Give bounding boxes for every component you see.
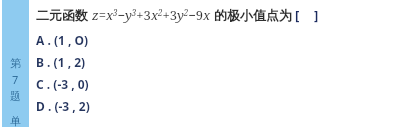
staticText: 单: [10, 114, 21, 127]
staticText: 第: [10, 56, 21, 70]
staticText: 7: [12, 72, 19, 87]
staticText: 题: [10, 89, 21, 103]
button[interactable]: C . (-3 , 0): [36, 73, 399, 95]
staticText: z=x3−y3+3x2+3y2−9x: [92, 6, 211, 24]
button[interactable]: A . (1 , O): [36, 29, 399, 51]
staticText: 的极小值点为: [214, 7, 292, 23]
staticText: [: [295, 6, 300, 24]
staticText: B . (1 , 2): [36, 54, 86, 70]
button[interactable]: B . (1 , 2): [36, 51, 399, 73]
staticText: A . (1 , O): [36, 32, 89, 48]
button[interactable]: D . (-3 , 2): [36, 95, 399, 117]
button[interactable]: 二元函数: [36, 3, 399, 27]
button[interactable]: 第 7 题 单选: [2, 0, 29, 127]
staticText: C . (-3 , 0): [36, 76, 89, 92]
staticText: ]: [314, 6, 319, 24]
staticText: D . (-3 , 2): [36, 98, 90, 114]
staticText: 二元函数: [36, 7, 88, 23]
